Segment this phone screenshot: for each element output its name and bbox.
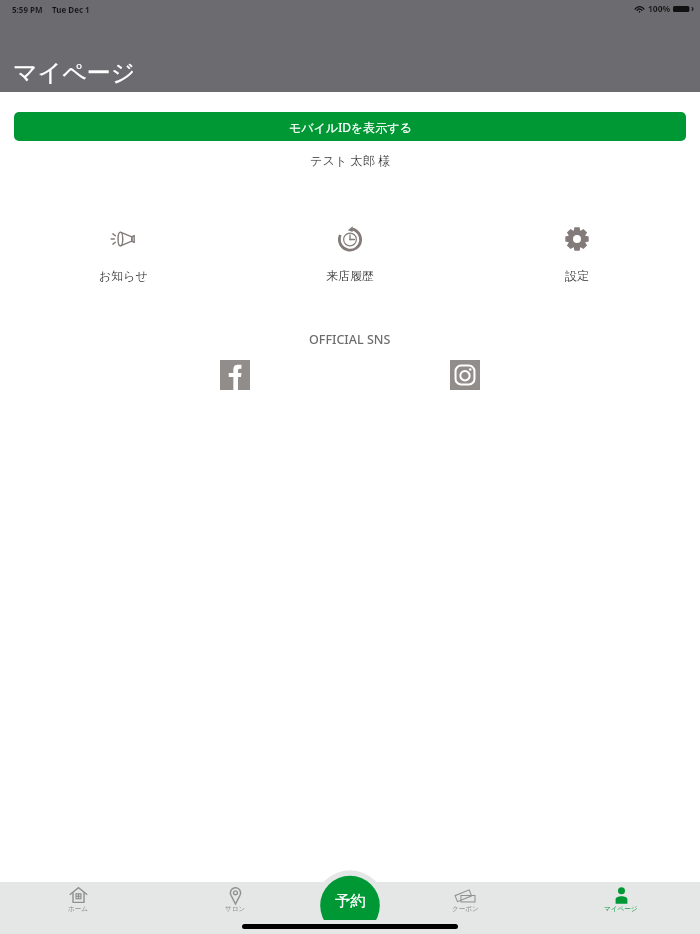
- staticText: マイページ: [604, 905, 638, 913]
- button[interactable]: お知らせ: [10, 226, 236, 283]
- button[interactable]: Facebook: [220, 360, 250, 390]
- staticText: マイページ: [13, 58, 136, 88]
- button[interactable]: マイページ: [591, 886, 651, 913]
- button[interactable]: モバイルIDを表示する: [14, 112, 686, 141]
- staticText: モバイルIDを表示する: [289, 119, 412, 135]
- staticText: お知らせ: [99, 268, 148, 283]
- staticText: 予約: [335, 891, 366, 911]
- staticText: Tue Dec 1: [52, 4, 90, 15]
- staticText: OFFICIAL SNS: [309, 331, 391, 348]
- staticText: 来店履歴: [326, 268, 374, 283]
- button[interactable]: 設定: [463, 226, 690, 283]
- staticText: 100%: [648, 3, 671, 15]
- button[interactable]: サロン: [205, 886, 265, 913]
- staticText: 設定: [565, 268, 589, 283]
- staticText: 5:59 PM: [12, 4, 43, 15]
- button[interactable]: クーポン: [435, 886, 495, 913]
- staticText: クーポン: [452, 905, 479, 913]
- button[interactable]: 来店履歴: [236, 226, 463, 283]
- staticText: ホーム: [68, 905, 89, 913]
- button[interactable]: ホーム: [48, 886, 108, 913]
- staticText: サロン: [225, 905, 246, 913]
- staticText: テスト 太郎 様: [310, 152, 391, 169]
- button[interactable]: 予約: [320, 871, 380, 931]
- button[interactable]: Instagram: [450, 360, 480, 390]
